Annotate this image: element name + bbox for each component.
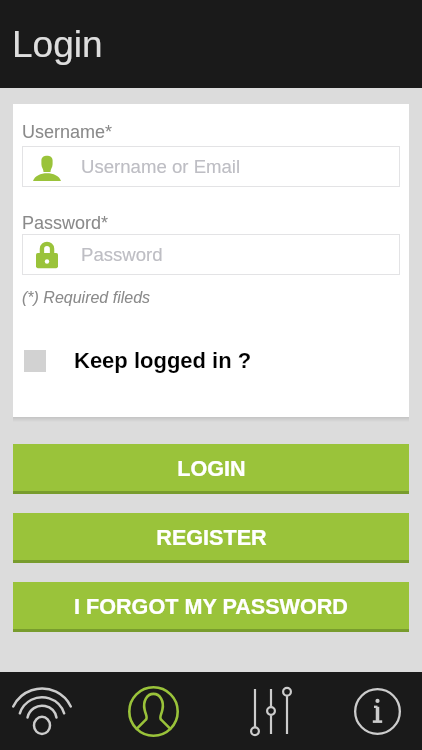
staticText: Password* (22, 213, 109, 233)
staticText: Username or Email (81, 156, 241, 177)
staticText: (*) Required fileds (22, 289, 151, 307)
staticText: Username* (22, 122, 113, 142)
staticText: LOGIN (177, 456, 246, 480)
button[interactable]: Profile (84, 672, 223, 750)
staticText: Login (12, 24, 103, 65)
button[interactable]: Keep logged in ? (22, 348, 400, 373)
button[interactable]: REGISTER (13, 513, 409, 563)
button[interactable]: Wifi (0, 672, 84, 750)
button[interactable]: Settings (223, 672, 319, 750)
staticText: Keep logged in ? (74, 348, 252, 373)
button[interactable]: LOGIN (13, 444, 409, 494)
staticText: Password (81, 244, 163, 265)
staticText: REGISTER (156, 525, 267, 549)
button[interactable]: Info (333, 672, 422, 750)
staticText: I FORGOT MY PASSWORD (74, 594, 348, 618)
button[interactable]: I FORGOT MY PASSWORD (13, 582, 409, 632)
